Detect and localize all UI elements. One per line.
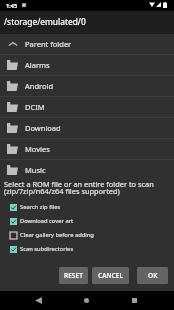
staticText: Select a ROM file or an entire folder to… [4, 179, 154, 189]
button[interactable]: OK [137, 267, 168, 284]
button[interactable]: Home [77, 291, 96, 310]
staticText: Android [25, 81, 54, 91]
staticText: Search zip files [20, 203, 61, 211]
button[interactable]: Search zip files [0, 200, 174, 214]
button[interactable]: DCIM [0, 97, 174, 117]
staticText: DCIM [25, 102, 45, 112]
button[interactable]: Scan subdirectories [0, 242, 174, 256]
staticText: OK [148, 271, 158, 280]
button[interactable]: Back [29, 291, 48, 310]
button[interactable]: CANCEL [92, 267, 129, 284]
staticText: Alarms [25, 60, 50, 70]
staticText: Parent folder [25, 39, 72, 49]
button[interactable]: Music [0, 160, 174, 180]
staticText: RESET [64, 271, 83, 280]
button[interactable]: RESET [59, 267, 88, 284]
button[interactable]: Android [0, 76, 174, 96]
staticText: (zip/7zip/n64/z64 files supported) [4, 186, 120, 196]
button[interactable]: Alarms [0, 55, 174, 75]
staticText: Download cover art [20, 217, 74, 225]
staticText: Music [25, 165, 46, 175]
button[interactable]: Download [0, 118, 174, 138]
staticText: /storage/emulated/0 [4, 16, 86, 27]
button[interactable]: Clear gallery before adding [0, 228, 174, 242]
staticText: CANCEL [98, 271, 124, 280]
button[interactable]: Recents [125, 291, 144, 310]
staticText: Movies [25, 144, 50, 154]
staticText: Download [25, 123, 61, 133]
button[interactable]: Download cover art [0, 214, 174, 228]
staticText: Scan subdirectories [20, 245, 74, 253]
button[interactable]: Movies [0, 139, 174, 159]
staticText: 1:45 [6, 2, 18, 10]
staticText: Clear gallery before adding [20, 231, 94, 239]
button[interactable]: Parent folder [0, 34, 174, 54]
